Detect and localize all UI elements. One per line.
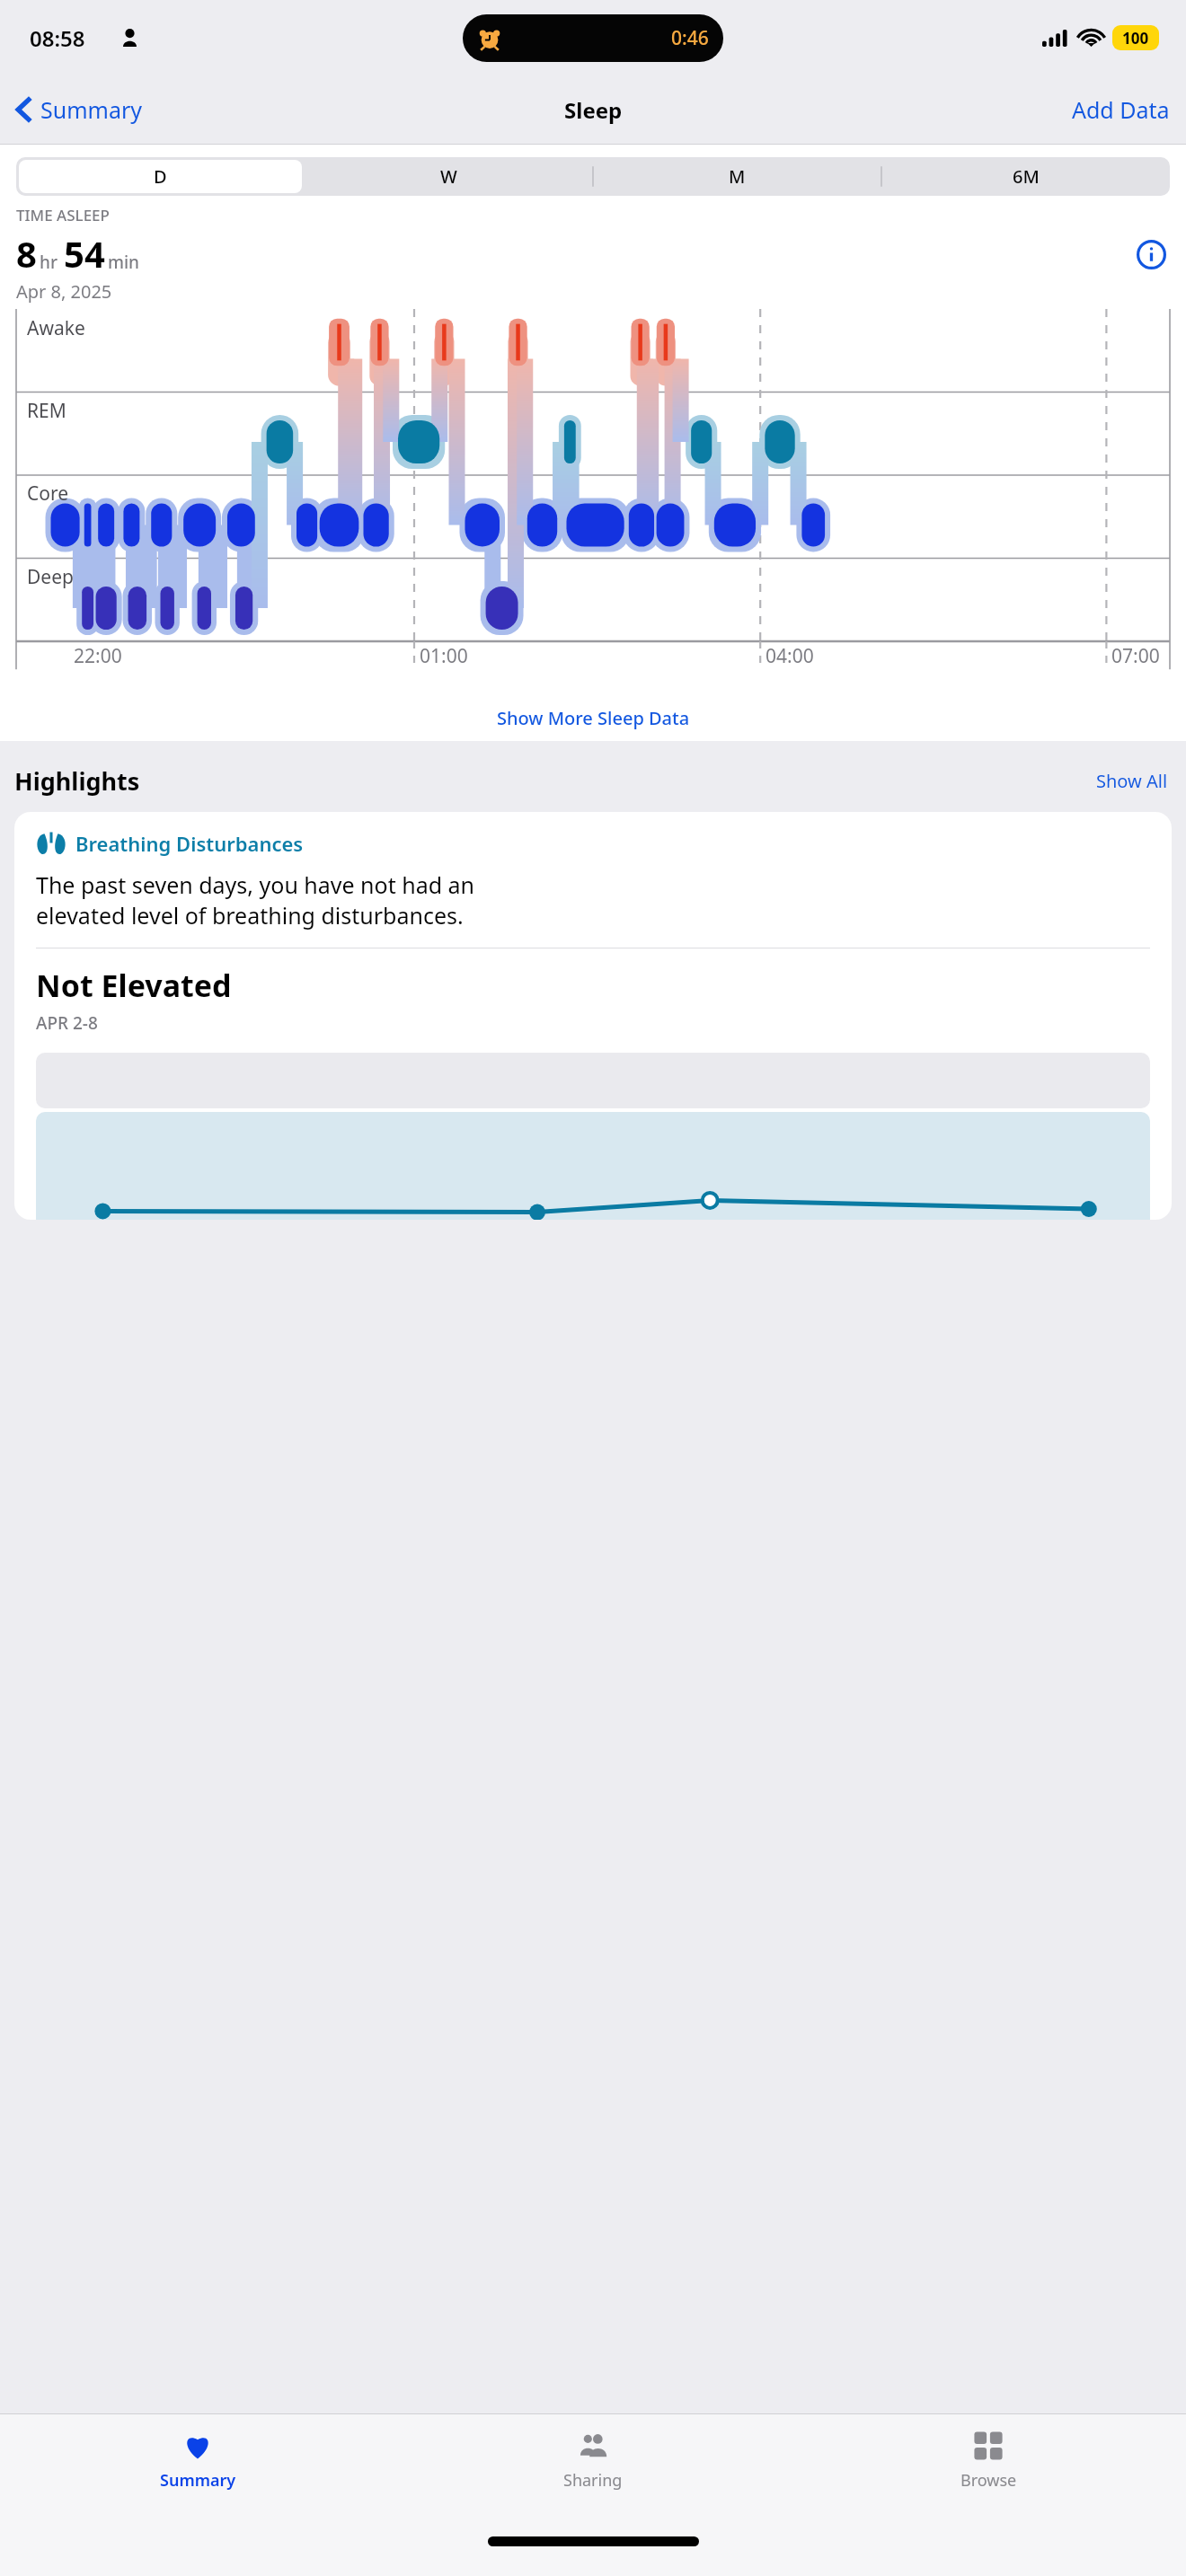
staticText: Browse (960, 2469, 1017, 2492)
staticText: Highlights (14, 764, 140, 798)
staticText: 08:58 (30, 23, 85, 53)
button[interactable]: 6M (881, 157, 1170, 196)
button[interactable]: Sharing (395, 2414, 791, 2526)
staticText: Awake (27, 315, 85, 341)
staticText: TIME ASLEEP (16, 205, 110, 225)
staticText: 54 (64, 229, 105, 278)
staticText: D (154, 164, 167, 189)
staticText: Breathing Disturbances (75, 830, 304, 857)
staticText: APR 2-8 (36, 1011, 98, 1035)
button[interactable]: Info (1133, 236, 1170, 273)
staticText: 07:00 (1111, 643, 1160, 669)
staticText: Show More Sleep Data (497, 706, 690, 730)
staticText: Deep (27, 564, 74, 590)
button[interactable]: W (305, 157, 593, 196)
staticText: Core (27, 481, 69, 507)
staticText: 04:00 (766, 643, 814, 669)
staticText: Sharing (563, 2469, 623, 2492)
button[interactable]: Summary (0, 2414, 395, 2526)
button[interactable]: D (16, 157, 305, 196)
staticText: M (729, 164, 746, 189)
staticText: REM (27, 398, 66, 424)
staticText: 8 (16, 229, 37, 278)
staticText: Not Elevated (36, 965, 232, 1006)
staticText: Apr 8, 2025 (16, 279, 112, 304)
button[interactable]: Browse (791, 2414, 1186, 2526)
staticText: Summary (160, 2469, 236, 2492)
button[interactable]: M (593, 157, 881, 196)
button[interactable]: Add Data (1056, 89, 1186, 130)
staticText: Show All (1096, 769, 1168, 793)
staticText: hr (40, 251, 58, 274)
staticText: W (440, 164, 457, 189)
button[interactable]: Summary (0, 89, 152, 130)
staticText: Sleep (564, 95, 623, 125)
staticText: 6M (1013, 164, 1040, 189)
button[interactable]: Show All (1093, 765, 1172, 797)
staticText: 01:00 (420, 643, 468, 669)
staticText: min (108, 251, 140, 274)
staticText: 22:00 (74, 643, 122, 669)
staticText: 0:46 (671, 25, 709, 51)
staticText: Add Data (1072, 94, 1170, 125)
button[interactable]: Breathing Disturbances (14, 812, 1172, 1220)
staticText: 100 (1122, 28, 1149, 49)
staticText: Summary (40, 94, 143, 125)
button[interactable]: Show More Sleep Data (490, 702, 697, 734)
staticText: The past seven days, you have not had an… (36, 869, 475, 931)
